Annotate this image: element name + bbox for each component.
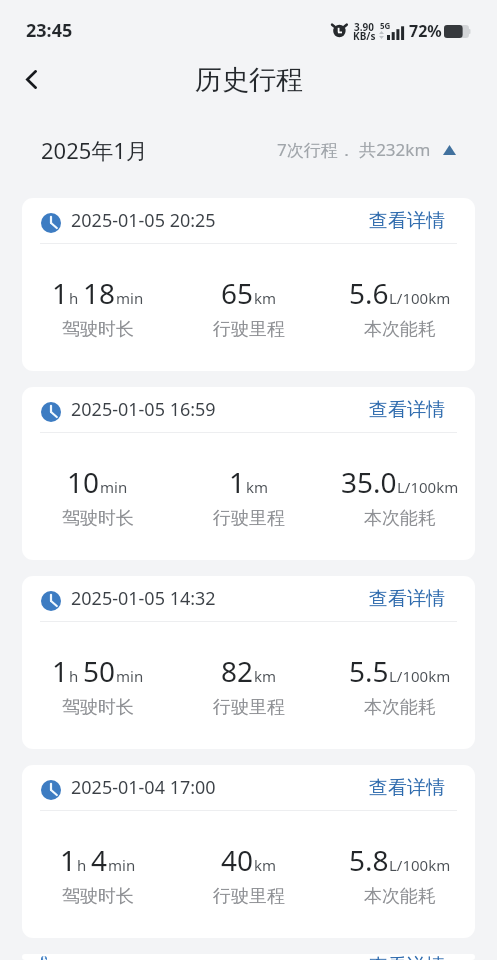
staticText: 驾驶时长 (62, 696, 134, 719)
staticText: 本次能耗 (364, 696, 436, 719)
staticText: 23:45 (26, 18, 73, 43)
staticText: km (254, 666, 277, 686)
staticText: 7次行程． 共232km (277, 138, 431, 161)
staticText: L/100km (389, 288, 451, 308)
staticText: 2025年1月 (41, 135, 148, 165)
staticText: L/100km (389, 666, 451, 686)
button[interactable]: 2025-01-04 17:00 (22, 765, 475, 938)
staticText: 驾驶时长 (62, 507, 134, 530)
staticText: 40 (221, 841, 254, 879)
staticText: 行驶里程 (213, 507, 285, 530)
staticText: 5G (380, 20, 391, 31)
staticText: 2025-01-05 16:59 (71, 397, 216, 422)
staticText: 历史行程 (195, 63, 303, 97)
staticText: km (254, 288, 277, 308)
staticText: 65 (221, 274, 254, 312)
button[interactable]: 查看详情 (369, 398, 445, 422)
staticText: 1 (52, 652, 69, 690)
staticText: min (108, 855, 136, 875)
staticText: 5.8 (349, 841, 389, 879)
staticText: 1 (229, 463, 246, 501)
button[interactable]: 2025-01-05 20:25 (22, 198, 475, 371)
staticText: 2025-01-05 14:32 (71, 586, 216, 611)
button[interactable]: 2025-01-04 08:26 (22, 954, 475, 960)
staticText: min (116, 666, 144, 686)
button[interactable]: 2025-01-05 16:59 (22, 387, 475, 560)
staticText: 行驶里程 (213, 885, 285, 908)
staticText: 72% (409, 20, 442, 42)
staticText: L/100km (389, 855, 451, 875)
staticText: 50 (83, 652, 116, 690)
button[interactable]: 查看详情 (369, 954, 445, 960)
staticText: min (100, 477, 128, 497)
button[interactable]: 查看详情 (369, 587, 445, 611)
button[interactable]: Back (8, 57, 52, 101)
staticText: 2025-01-05 20:25 (71, 208, 216, 233)
staticText: min (116, 288, 144, 308)
staticText: 4 (91, 841, 108, 879)
staticText: h (69, 288, 79, 308)
staticText: 1 (52, 274, 69, 312)
button[interactable]: 7次行程． 共232km (277, 138, 456, 161)
staticText: 2025-01-04 17:00 (71, 775, 216, 800)
staticText: 18 (83, 274, 116, 312)
staticText: 本次能耗 (364, 318, 436, 341)
button[interactable]: 2025-01-05 14:32 (22, 576, 475, 749)
staticText: 3.90 (354, 20, 374, 34)
staticText: km (246, 477, 269, 497)
button[interactable]: 查看详情 (369, 209, 445, 233)
staticText: 5.5 (349, 652, 389, 690)
staticText: 82 (221, 652, 254, 690)
staticText: 1 (60, 841, 77, 879)
button[interactable]: 查看详情 (369, 776, 445, 800)
staticText: L/100km (397, 477, 459, 497)
staticText: h (77, 855, 87, 875)
staticText: 本次能耗 (364, 885, 436, 908)
staticText: 10 (67, 463, 100, 501)
staticText: 35.0 (341, 463, 397, 501)
staticText: 5.6 (349, 274, 389, 312)
staticText: 行驶里程 (213, 318, 285, 341)
staticText: KB/s (353, 29, 376, 43)
staticText: h (69, 666, 79, 686)
staticText: 驾驶时长 (62, 885, 134, 908)
staticText: 本次能耗 (364, 507, 436, 530)
staticText: 驾驶时长 (62, 318, 134, 341)
staticText: km (254, 855, 277, 875)
staticText: 行驶里程 (213, 696, 285, 719)
